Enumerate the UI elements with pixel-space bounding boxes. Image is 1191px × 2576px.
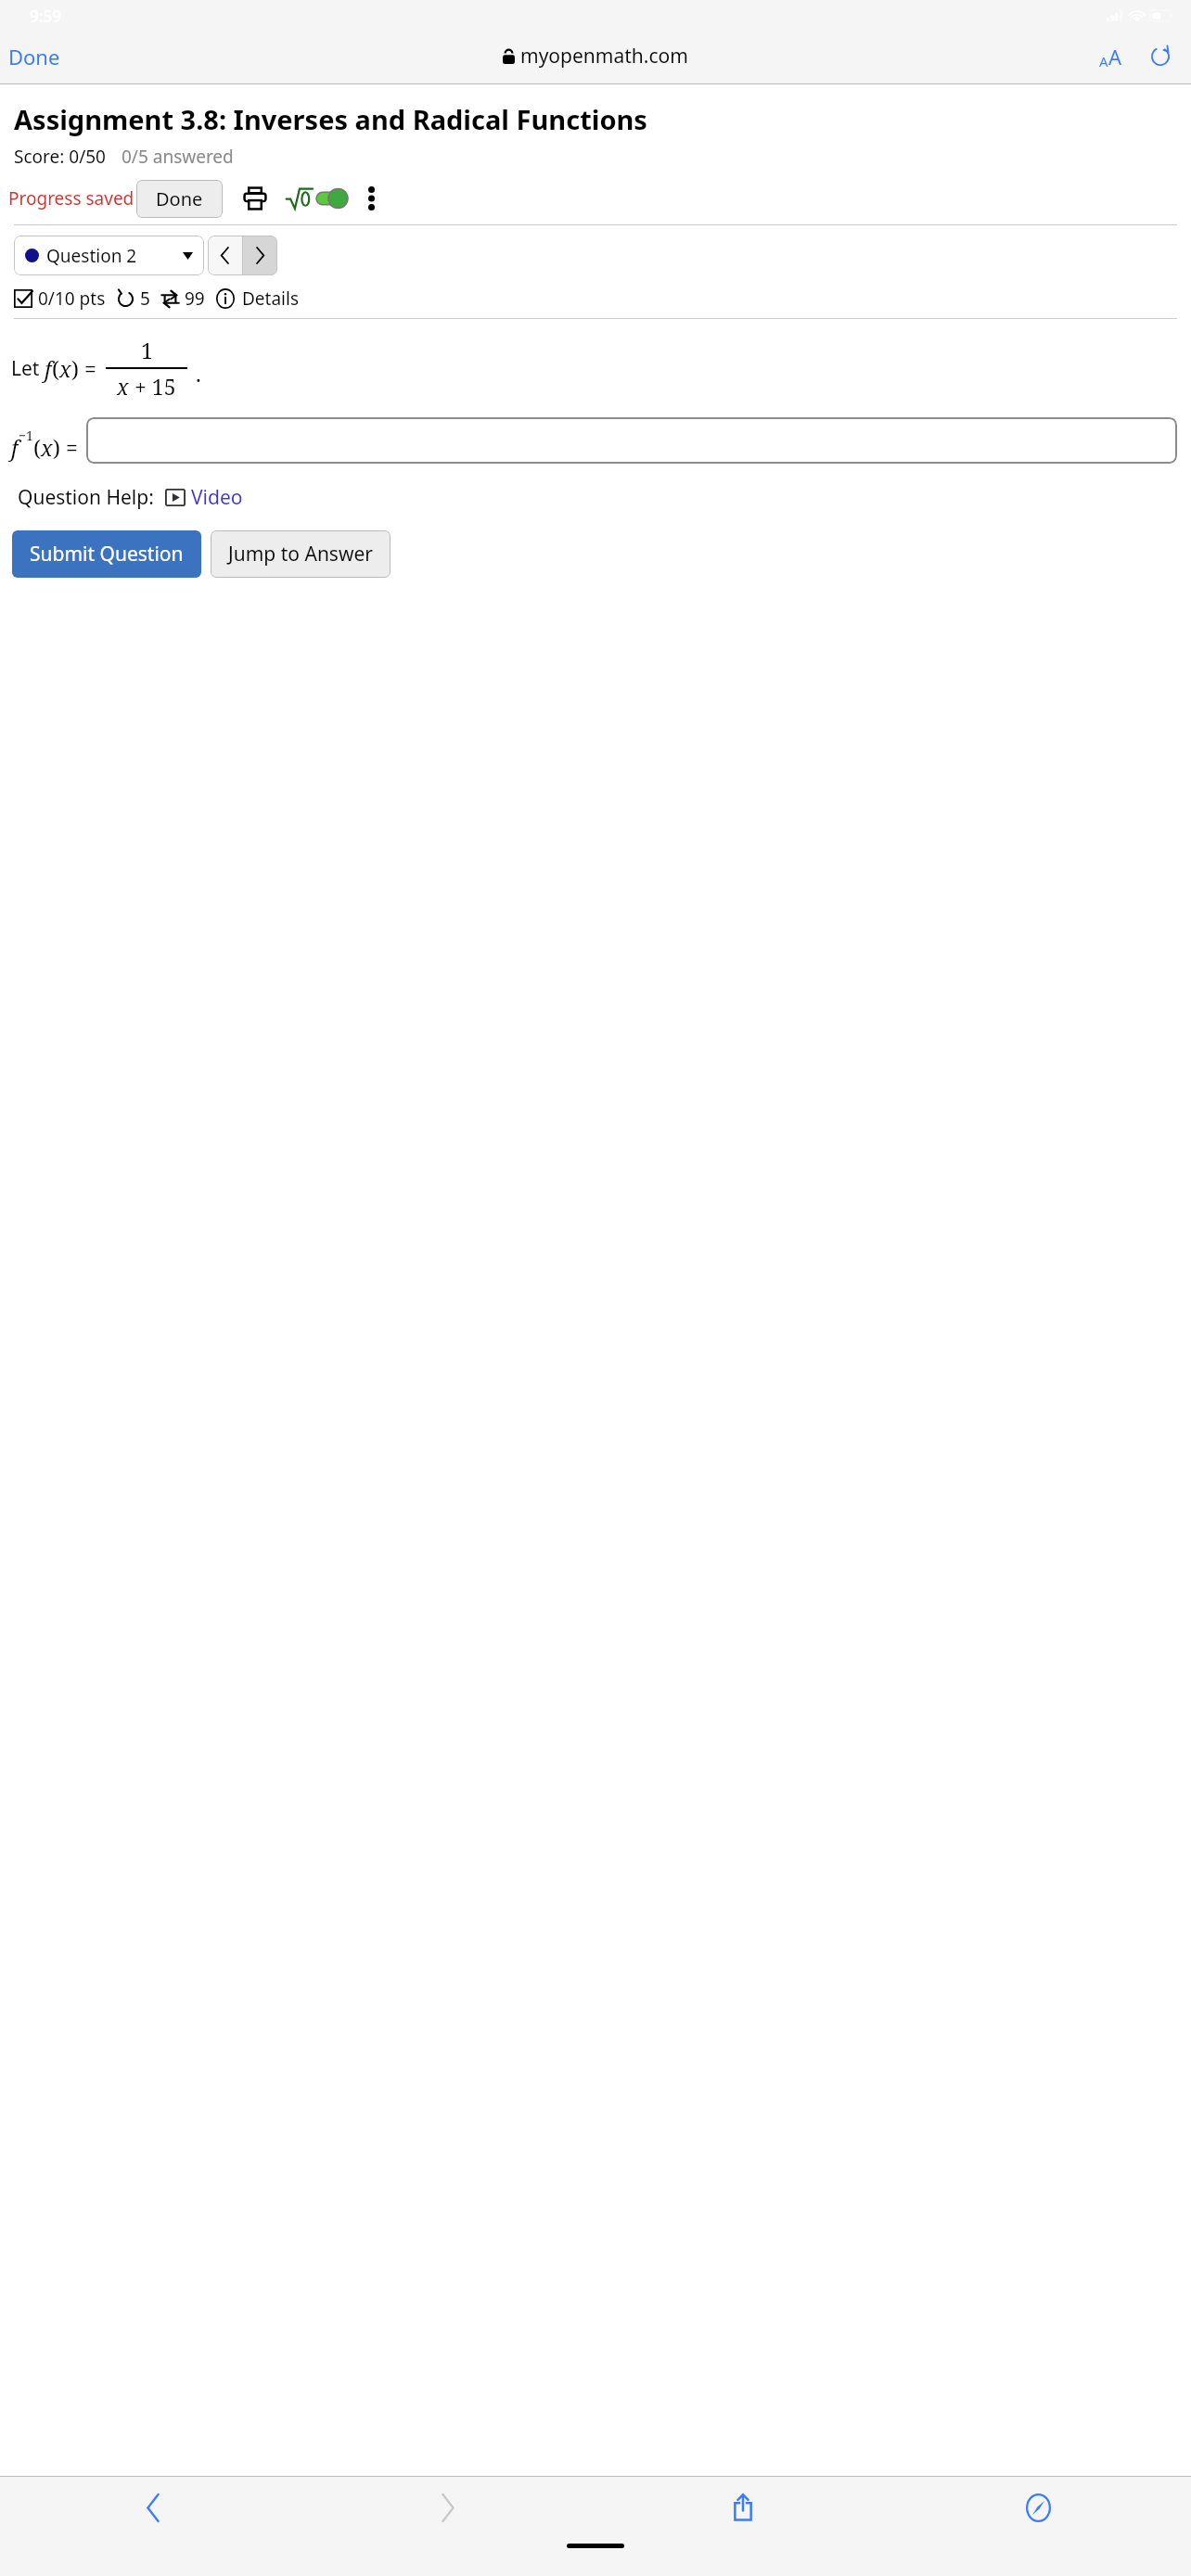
button[interactable]: Video xyxy=(165,484,243,511)
button[interactable]: Share xyxy=(595,2477,890,2538)
staticText: Question Help: xyxy=(18,484,154,511)
staticText: ( xyxy=(33,433,41,462)
staticText: ( xyxy=(52,354,59,383)
button[interactable]: Answer input xyxy=(86,417,1177,464)
staticText: Score: 0/50 xyxy=(14,145,106,169)
staticText: Submit Question xyxy=(30,541,184,567)
button[interactable]: Back xyxy=(6,2477,301,2538)
staticText: 5 xyxy=(140,287,150,311)
staticText: Let xyxy=(11,355,45,382)
staticText: Video xyxy=(191,484,243,511)
button[interactable]: Bookmarks xyxy=(890,2477,1185,2538)
staticText: Details xyxy=(242,287,300,311)
staticText: myopenmath.com xyxy=(520,43,688,70)
staticText: Done xyxy=(156,186,203,211)
staticText: ) = xyxy=(53,433,78,462)
staticText: Jump to Answer xyxy=(228,541,373,567)
staticText: Done xyxy=(8,43,60,70)
button[interactable]: Jump to Answer xyxy=(211,530,391,578)
staticText: 1 xyxy=(141,336,153,364)
button[interactable]: Submit Question xyxy=(12,530,201,578)
staticText: . xyxy=(196,359,201,388)
button[interactable]: Done xyxy=(0,35,69,78)
staticText: ) = xyxy=(71,354,102,383)
staticText: Assignment 3.8: Inverses and Radical Fun… xyxy=(14,101,647,137)
button[interactable]: Question 2 xyxy=(14,236,204,275)
staticText: Progress saved xyxy=(8,186,134,210)
button[interactable]: Next question xyxy=(243,236,277,275)
button[interactable]: Done xyxy=(136,180,223,218)
staticText: x xyxy=(41,433,53,462)
staticText: −1 xyxy=(19,427,33,444)
button[interactable]: Details xyxy=(215,287,300,311)
button[interactable]: Previous question xyxy=(208,236,242,275)
staticText: f xyxy=(45,354,52,383)
staticText: A xyxy=(1108,43,1122,70)
staticText: A xyxy=(1099,52,1108,70)
button[interactable]: More options xyxy=(361,183,382,214)
button[interactable]: Print assignment xyxy=(239,183,271,214)
staticText: f xyxy=(11,433,19,462)
staticText: Question 2 xyxy=(46,244,183,268)
staticText: 99 xyxy=(185,287,205,311)
staticText: x xyxy=(59,354,71,383)
button[interactable]: Text size options xyxy=(1092,35,1130,78)
staticText: 0/5 answered xyxy=(122,145,234,169)
button[interactable]: Reload page xyxy=(1143,39,1178,74)
staticText: + 15 xyxy=(129,372,176,401)
staticText: 9:59 xyxy=(30,6,61,27)
staticText: x xyxy=(117,372,129,401)
button[interactable]: myopenmath.com xyxy=(493,37,698,75)
staticText: 0/10 pts xyxy=(38,287,106,311)
button[interactable]: Toggle math entry mode xyxy=(286,183,348,214)
